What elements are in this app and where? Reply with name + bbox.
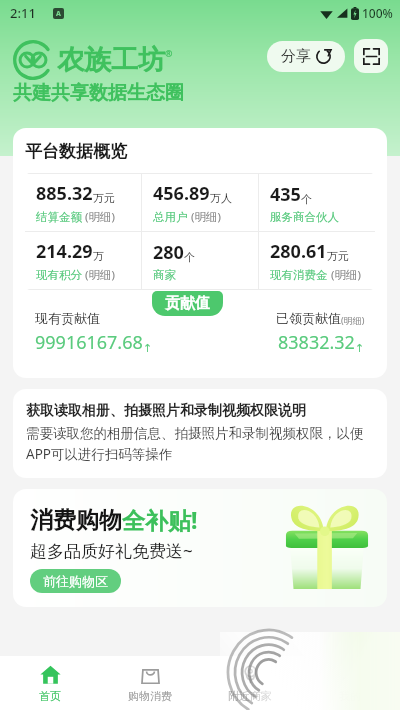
button[interactable]: 前往购物区 [30, 569, 121, 593]
staticText: 现有积分 [36, 268, 82, 282]
staticText: 购物消费 [128, 689, 172, 703]
staticText: 超多品质好礼免费送~ [30, 539, 193, 562]
staticText: 个 [184, 250, 195, 264]
staticText: A [56, 9, 61, 19]
staticText: 首页 [39, 689, 61, 703]
button[interactable]: 附近商家 [200, 656, 300, 710]
staticText: 前往购物区 [43, 573, 108, 589]
button[interactable]: 435 [259, 174, 375, 231]
staticText: 99916167.68 [35, 330, 143, 355]
button[interactable]: 280.61 [259, 232, 375, 289]
staticText: 万人 [210, 191, 232, 205]
staticText: 分享 [281, 47, 311, 66]
button[interactable]: 我的 [300, 656, 400, 710]
staticText: 万元 [93, 191, 115, 205]
button[interactable]: 456.89 [142, 174, 258, 231]
staticText: 附近商家 [228, 689, 272, 703]
staticText: 商家 [153, 268, 176, 282]
staticText: 获取读取相册、拍摄照片和录制视频权限说明 [26, 402, 306, 420]
staticText: 需要读取您的相册信息、拍摄照片和录制视频权限，以便APP可以进行扫码等操作 [26, 425, 374, 463]
button[interactable]: 消费购物 [13, 489, 387, 607]
staticText: 总用户 [153, 210, 188, 224]
staticText: 个 [301, 192, 312, 206]
staticText: 服务商合伙人 [270, 210, 339, 224]
staticText: ® [165, 47, 173, 59]
staticText: 2:11 [10, 4, 36, 22]
staticText: 214.29 [36, 239, 93, 264]
staticText: 万元 [327, 249, 349, 263]
button[interactable]: 885.32 [25, 174, 141, 231]
button[interactable]: 首页 [0, 656, 100, 710]
staticText: (明细) [82, 267, 115, 283]
staticText: 农族工坊 [57, 43, 165, 77]
staticText: 已领贡献值 [276, 310, 341, 326]
staticText: 100% [362, 5, 393, 21]
staticText: ↑ [355, 342, 365, 355]
staticText: 现有消费金 [270, 268, 328, 282]
staticText: 万 [93, 249, 104, 263]
staticText: 结算金额 [36, 210, 82, 224]
button[interactable]: 购物消费 [100, 656, 200, 710]
staticText: 全补贴! [122, 504, 198, 535]
staticText: 456.89 [153, 181, 210, 206]
button[interactable]: 已领贡献值 [200, 310, 375, 355]
staticText: 平台数据概览 [25, 141, 127, 162]
button[interactable]: 280 [142, 232, 258, 289]
staticText: 83832.32 [278, 330, 355, 355]
staticText: ↑ [143, 342, 153, 355]
staticText: 280 [153, 240, 184, 265]
button[interactable]: 214.29 [25, 232, 141, 289]
staticText: 贡献值 [165, 294, 210, 313]
button[interactable]: 分享 [267, 41, 345, 72]
button[interactable]: 获取读取相册、拍摄照片和录制视频权限说明 [13, 389, 387, 478]
staticText: (明细) [82, 209, 115, 225]
button[interactable]: 现有贡献值 [25, 310, 200, 355]
staticText: 435 [270, 182, 301, 207]
staticText: (明细) [188, 209, 221, 225]
staticText: 共建共享数据生态圈 [13, 81, 184, 105]
staticText: 消费购物 [30, 506, 122, 535]
staticText: 280.61 [270, 239, 327, 264]
staticText: 现有贡献值 [35, 310, 100, 326]
staticText: 885.32 [36, 181, 93, 206]
button[interactable]: 扫一扫 [354, 39, 388, 73]
staticText: (明细) [328, 267, 361, 283]
staticText: (明细) [341, 314, 365, 326]
button[interactable]: 贡献值 [152, 291, 223, 316]
